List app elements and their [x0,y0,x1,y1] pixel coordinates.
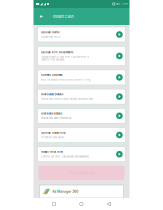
staticText: Provide your monthly salary amount and s… [41,98,94,100]
staticText: Upload Selfie [41,31,59,34]
staticText: To confirm your salary. [41,136,65,139]
staticText: Upload KYC Documents [41,51,73,54]
staticText: Provide your bank information. [41,117,72,120]
staticText: Current Address [41,74,62,77]
button[interactable]: Recents [48,202,61,205]
button[interactable]: Back [102,202,115,206]
staticText: Give Salary Details [41,93,63,96]
staticText: Give Bank Details [41,112,62,115]
staticText: Upload Salary Slip [41,131,66,134]
staticText: Accept Final Offer [41,150,63,153]
staticText: Enter the address where you are currentl… [41,78,91,81]
staticText: Ad Manager 360 [52,190,78,193]
button[interactable]: Upload KYC Documents [37,46,125,66]
staticText: Upload your selfie. [41,36,61,38]
button[interactable]: Give Salary Details [37,89,125,104]
button[interactable]: Give Bank Details [37,108,125,123]
button[interactable]: Home [75,202,88,206]
button[interactable]: Ad Manager 360 [39,185,123,198]
button[interactable]: Accept Final Offer [37,147,125,162]
staticText: Upload a Photo of your PAN Card and Proo… [41,56,89,61]
button[interactable]: Upload Salary Slip [37,127,125,142]
staticText: 85% 7:09 [116,2,127,5]
button[interactable]: Back [33,8,52,25]
button[interactable]: Upload Selfie [37,27,125,42]
staticText: Confirm our offer, loan amount and agree… [41,155,90,158]
button[interactable]: Current Address [37,70,125,85]
staticText: Check Eligibility [68,171,95,175]
staticText: Instant Cash [52,14,73,19]
